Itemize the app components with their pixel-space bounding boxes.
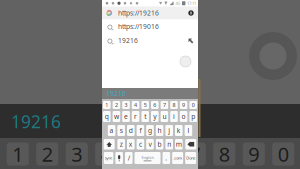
button[interactable]: f: [136, 125, 145, 136]
staticText: English: [142, 155, 154, 160]
staticText: z: [120, 140, 123, 149]
staticText: s: [120, 126, 123, 135]
button[interactable]: 4: [131, 101, 140, 109]
staticText: n: [167, 140, 171, 149]
staticText: h: [158, 126, 162, 135]
button[interactable]: u: [160, 111, 169, 122]
staticText: q: [105, 112, 109, 121]
button[interactable]: d: [126, 125, 136, 136]
button[interactable]: 3: [121, 101, 131, 109]
staticText: i: [173, 112, 175, 121]
staticText: 2: [115, 101, 118, 109]
staticText: 3: [71, 141, 82, 167]
button[interactable]: c: [136, 139, 145, 149]
button[interactable]: e: [121, 111, 131, 122]
button[interactable]: Done: [184, 152, 197, 164]
button[interactable]: Voice input: [114, 152, 124, 164]
staticText: y: [153, 112, 156, 121]
staticText: w: [114, 112, 119, 121]
staticText: .: [165, 154, 167, 162]
button[interactable]: z: [116, 139, 126, 149]
button[interactable]: t: [140, 111, 150, 122]
button[interactable]: p: [188, 111, 198, 122]
staticText: 5: [130, 141, 141, 167]
button[interactable]: q: [102, 111, 112, 122]
button[interactable]: m: [174, 139, 184, 149]
button[interactable]: x: [126, 139, 136, 149]
staticText: u: [162, 112, 166, 121]
button[interactable]: Space: [134, 152, 162, 164]
button[interactable]: b: [155, 139, 164, 149]
staticText: 19216: [106, 89, 126, 98]
staticText: 9: [182, 101, 185, 109]
button[interactable]: .: [162, 152, 171, 164]
staticText: x: [129, 140, 133, 149]
button[interactable]: l: [184, 125, 193, 136]
button[interactable]: v: [145, 139, 155, 149]
button[interactable]: 19216: [102, 33, 198, 47]
staticText: 9: [248, 141, 259, 167]
staticText: c: [139, 140, 142, 149]
staticText: 5: [144, 101, 147, 109]
staticText: 6: [160, 141, 171, 167]
button[interactable]: https://19016: [102, 19, 198, 33]
button[interactable]: 0: [188, 101, 198, 109]
staticText: 8: [219, 141, 230, 167]
button[interactable]: h: [155, 125, 164, 136]
staticText: 19216: [11, 110, 61, 133]
button[interactable]: r: [131, 111, 140, 122]
staticText: o: [182, 112, 186, 121]
staticText: r: [134, 112, 137, 121]
staticText: 0: [192, 101, 195, 109]
staticText: 1: [105, 101, 108, 109]
button[interactable]: /: [124, 152, 133, 164]
button[interactable]: g: [145, 125, 155, 136]
button[interactable]: .com: [171, 152, 184, 164]
staticText: https://19216: [118, 9, 159, 17]
staticText: l: [187, 126, 189, 135]
staticText: 19216: [118, 36, 138, 45]
staticText: https://19016: [118, 22, 159, 31]
staticText: a: [110, 126, 114, 135]
button[interactable]: 2: [112, 101, 121, 109]
staticText: 2: [42, 141, 53, 167]
staticText: e: [124, 112, 128, 121]
button[interactable]: Shift: [102, 139, 116, 149]
staticText: g: [148, 126, 152, 135]
button[interactable]: 1: [102, 101, 112, 109]
staticText: 4: [134, 101, 137, 109]
staticText: b: [158, 140, 162, 149]
button[interactable]: i: [169, 111, 179, 122]
staticText: m: [176, 140, 182, 149]
staticText: p: [191, 112, 195, 121]
button[interactable]: https://19216: [102, 6, 198, 19]
staticText: v: [148, 140, 151, 149]
button[interactable]: o: [179, 111, 188, 122]
button[interactable]: 5: [140, 101, 150, 109]
staticText: f: [139, 126, 141, 135]
staticText: .com: [173, 155, 182, 161]
button[interactable]: n: [164, 139, 174, 149]
button[interactable]: w: [112, 111, 121, 122]
button[interactable]: 9: [179, 101, 188, 109]
staticText: 7: [189, 141, 200, 167]
button[interactable]: a: [107, 125, 116, 136]
staticText: Sym: [105, 155, 113, 161]
button[interactable]: 8: [169, 101, 179, 109]
button[interactable]: Backspace: [184, 139, 198, 149]
button[interactable]: y: [150, 111, 160, 122]
staticText: 6: [153, 101, 156, 109]
button[interactable]: k: [174, 125, 184, 136]
button[interactable]: s: [116, 125, 126, 136]
staticText: 8: [172, 101, 175, 109]
staticText: d: [129, 126, 133, 135]
button[interactable]: Sym: [103, 152, 114, 164]
button[interactable]: 7: [160, 101, 169, 109]
button[interactable]: 6: [150, 101, 160, 109]
staticText: 4: [101, 141, 112, 167]
button[interactable]: j: [164, 125, 174, 136]
staticText: 4G: [176, 1, 181, 6]
staticText: t: [144, 112, 146, 121]
staticText: 1: [12, 141, 23, 167]
staticText: 3: [124, 101, 127, 109]
